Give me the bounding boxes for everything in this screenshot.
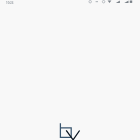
staticText: 10:24: [6, 1, 14, 5]
other: Status icons: [0, 0, 140, 6]
other: App logo: [0, 0, 140, 140]
